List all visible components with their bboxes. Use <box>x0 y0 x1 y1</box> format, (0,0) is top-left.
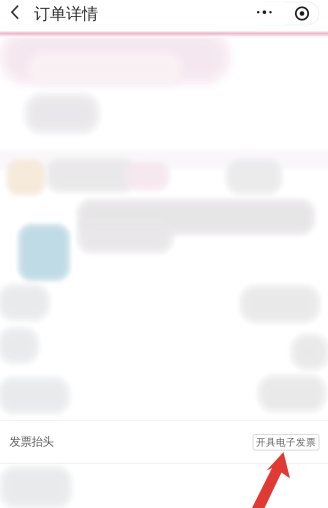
staticText: 订单详情 <box>34 4 98 24</box>
button[interactable]: More options <box>252 2 285 25</box>
staticText: 发票抬头 <box>10 434 54 449</box>
button[interactable]: Back <box>0 0 31 30</box>
button[interactable]: 开具电子发票 <box>253 435 319 450</box>
staticText: 开具电子发票 <box>256 436 316 448</box>
button[interactable]: Close mini program <box>285 2 319 25</box>
